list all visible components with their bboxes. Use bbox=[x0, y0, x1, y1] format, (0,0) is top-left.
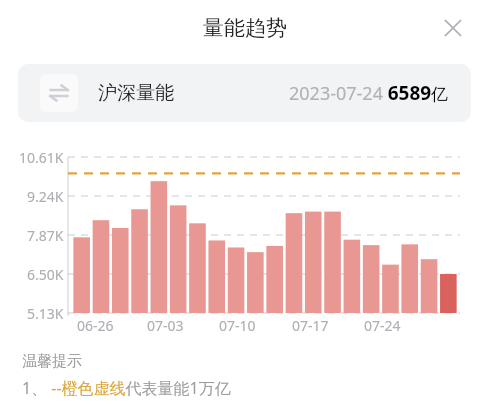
staticText: 1、 --橙色虚线代表量能1万亿 bbox=[22, 377, 231, 399]
staticText: 2023-07-24 6589亿 bbox=[289, 80, 449, 106]
staticText: 6.50K bbox=[27, 265, 64, 284]
staticText: 07-10 bbox=[219, 316, 256, 335]
staticText: 07-03 bbox=[147, 316, 184, 335]
staticText: 量能趋势 bbox=[203, 15, 287, 41]
staticText: 沪深量能 bbox=[98, 81, 174, 105]
staticText: 07-24 bbox=[364, 316, 401, 335]
staticText: 9.24K bbox=[27, 187, 64, 206]
button[interactable]: Close bbox=[431, 6, 475, 50]
staticText: 07-17 bbox=[292, 316, 329, 335]
staticText: 5.13K bbox=[27, 304, 64, 323]
staticText: 温馨提示 bbox=[22, 352, 82, 371]
staticText: 10.61K bbox=[19, 148, 64, 167]
staticText: 06-26 bbox=[77, 316, 114, 335]
button[interactable]: 沪深量能 bbox=[18, 64, 471, 122]
staticText: 7.87K bbox=[27, 226, 64, 245]
